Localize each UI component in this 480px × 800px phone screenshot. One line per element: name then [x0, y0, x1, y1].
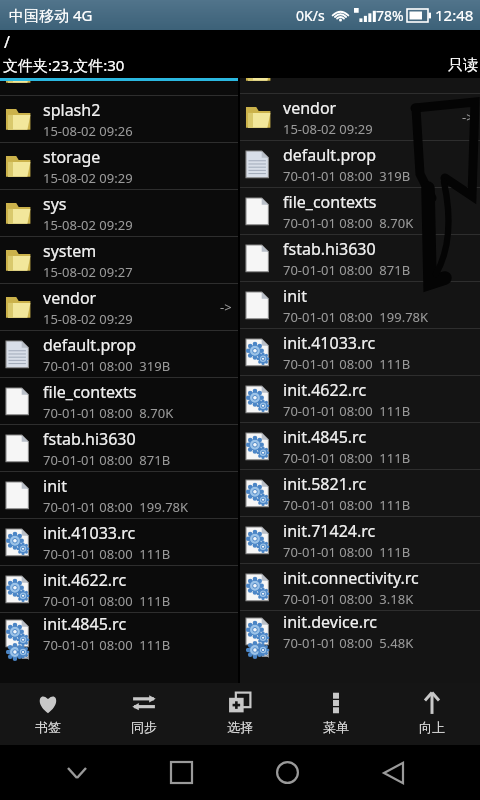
- staticText: 70-01-01 08:00 5.48K: [283, 634, 414, 650]
- button[interactable]: init.device.rc: [240, 611, 480, 650]
- staticText: 70-01-01 08:00 111B: [43, 592, 171, 610]
- staticText: storage: [43, 146, 101, 168]
- staticText: 70-01-01 08:00 871B: [43, 451, 171, 469]
- staticText: vendor: [283, 97, 337, 119]
- staticText: init.4845.rc: [283, 426, 367, 448]
- staticText: 70-01-01 08:00 8.70K: [283, 214, 414, 232]
- staticText: 70-01-01 08:00 319B: [43, 357, 171, 375]
- staticText: fstab.hi3630: [43, 428, 136, 450]
- button[interactable]: init.71424.rc: [240, 517, 480, 564]
- staticText: fstab.hi3630: [283, 238, 376, 260]
- staticText: ->: [220, 298, 232, 316]
- staticText: init.41033.rc: [43, 522, 136, 544]
- staticText: init.41033.rc: [283, 332, 376, 354]
- button[interactable]: 同步: [96, 683, 192, 745]
- button[interactable]: init.4622.rc: [240, 376, 480, 423]
- staticText: 0K/s: [296, 6, 325, 25]
- button[interactable]: file_contexts: [0, 378, 238, 425]
- staticText: init.connectivity.rc: [283, 567, 419, 589]
- staticText: 15-08-02 09:29: [43, 216, 133, 234]
- button[interactable]: fstab.hi3630: [240, 235, 480, 282]
- staticText: 文件夹:23,文件:30: [3, 55, 125, 75]
- staticText: 15-08-02 09:26: [43, 122, 133, 140]
- button[interactable]: fstab.hi3630: [0, 425, 238, 472]
- button[interactable]: 菜单: [288, 683, 384, 745]
- staticText: vendor: [43, 287, 97, 309]
- staticText: 只读: [448, 56, 478, 75]
- staticText: init.5821.rc: [283, 473, 367, 495]
- staticText: 15-08-02 09:29: [43, 310, 133, 328]
- button[interactable]: 选择: [192, 683, 288, 745]
- staticText: splash2: [43, 99, 101, 121]
- button[interactable]: vendor: [240, 94, 480, 141]
- staticText: 70-01-01 08:00 319B: [283, 167, 411, 185]
- staticText: 15-08-02 09:29: [43, 169, 133, 187]
- staticText: sys: [43, 193, 67, 215]
- staticText: 70-01-01 08:00 111B: [283, 449, 411, 467]
- button[interactable]: default.prop: [240, 141, 480, 188]
- button[interactable]: 向上: [384, 683, 480, 745]
- staticText: init.4622.rc: [283, 379, 367, 401]
- button[interactable]: init.41033.rc: [240, 329, 480, 376]
- button[interactable]: init.connectivity.rc: [240, 564, 480, 611]
- button[interactable]: init: [0, 472, 238, 519]
- staticText: default.prop: [43, 334, 137, 356]
- staticText: 70-01-01 08:00 871B: [283, 261, 411, 279]
- button[interactable]: 书签: [0, 683, 96, 745]
- staticText: 同步: [131, 719, 157, 735]
- button[interactable]: storage: [0, 143, 238, 190]
- staticText: 15-08-02 09:29: [283, 120, 373, 138]
- staticText: 15-08-02 09:27: [43, 263, 133, 281]
- staticText: 12:48: [435, 5, 474, 25]
- staticText: 70-01-01 08:00 8.70K: [43, 404, 174, 422]
- button[interactable]: init.41033.rc: [0, 519, 238, 566]
- button[interactable]: system: [0, 237, 238, 284]
- staticText: /: [4, 31, 10, 53]
- staticText: 70-01-01 08:00 111B: [283, 402, 411, 420]
- staticText: default.prop: [283, 144, 377, 166]
- button[interactable]: init.4845.rc: [0, 613, 238, 652]
- button[interactable]: splash2: [0, 96, 238, 143]
- staticText: 70-01-01 08:00 111B: [43, 545, 171, 563]
- staticText: 向上: [419, 719, 445, 735]
- staticText: 菜单: [323, 719, 349, 735]
- staticText: file_contexts: [43, 381, 137, 403]
- button[interactable]: Home: [234, 745, 340, 800]
- button[interactable]: Hide keyboard: [24, 745, 129, 800]
- staticText: 70-01-01 08:00 111B: [283, 355, 411, 373]
- button[interactable]: vendor: [0, 284, 238, 331]
- staticText: 78%: [376, 6, 404, 25]
- staticText: 70-01-01 08:00 199.78K: [283, 308, 429, 326]
- button[interactable]: init.4845.rc: [240, 423, 480, 470]
- staticText: 70-01-01 08:00 3.18K: [283, 590, 414, 608]
- staticText: 书签: [35, 719, 61, 735]
- button[interactable]: init.5821.rc: [240, 470, 480, 517]
- staticText: init.4622.rc: [43, 569, 127, 591]
- staticText: system: [43, 240, 97, 262]
- staticText: 中国移动 4G: [9, 5, 93, 25]
- button[interactable]: init: [240, 282, 480, 329]
- staticText: 70-01-01 08:00 111B: [283, 543, 411, 561]
- staticText: init.device.rc: [283, 611, 377, 633]
- button[interactable]: Recents: [129, 745, 234, 800]
- staticText: init.71424.rc: [283, 520, 376, 542]
- staticText: file_contexts: [283, 191, 377, 213]
- button[interactable]: Back: [340, 745, 446, 800]
- staticText: 70-01-01 08:00 111B: [43, 636, 171, 652]
- staticText: 70-01-01 08:00 111B: [283, 496, 411, 514]
- staticText: init: [43, 475, 67, 497]
- staticText: 70-01-01 08:00 199.78K: [43, 498, 189, 516]
- button[interactable]: 15-08-02 09:27: [240, 78, 480, 94]
- staticText: 选择: [227, 719, 253, 735]
- staticText: ->: [462, 108, 474, 126]
- staticText: init: [283, 285, 307, 307]
- staticText: init.4845.rc: [43, 613, 127, 635]
- button[interactable]: sys: [0, 190, 238, 237]
- button[interactable]: init.4622.rc: [0, 566, 238, 613]
- button[interactable]: file_contexts: [240, 188, 480, 235]
- button[interactable]: default.prop: [0, 331, 238, 378]
- button[interactable]: 15-08-02 09:29: [0, 78, 238, 96]
